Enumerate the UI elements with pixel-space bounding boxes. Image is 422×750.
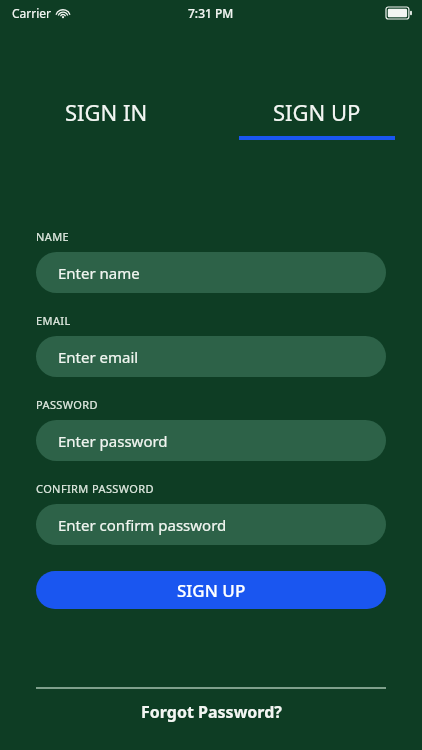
- button[interactable]: Forgot Password?: [36, 701, 386, 723]
- button[interactable]: Enter name: [36, 252, 386, 293]
- staticText: SIGN IN: [65, 97, 148, 127]
- staticText: Enter name: [58, 263, 140, 283]
- staticText: SIGN UP: [177, 579, 246, 602]
- button[interactable]: Enter confirm password: [36, 504, 386, 545]
- button[interactable]: Enter email: [36, 336, 386, 377]
- staticText: Enter confirm password: [58, 515, 227, 535]
- button[interactable]: SIGN UP: [211, 97, 422, 140]
- staticText: PASSWORD: [36, 397, 98, 412]
- button[interactable]: Enter password: [36, 420, 386, 461]
- staticText: Enter password: [58, 431, 168, 451]
- staticText: Enter email: [58, 347, 139, 367]
- button[interactable]: SIGN UP: [36, 571, 386, 609]
- staticText: NAME: [36, 229, 70, 244]
- staticText: Forgot Password?: [141, 701, 282, 723]
- staticText: CONFIRM PASSWORD: [36, 481, 154, 496]
- staticText: 7:31 PM: [188, 5, 234, 21]
- button[interactable]: SIGN IN: [0, 97, 211, 140]
- staticText: SIGN UP: [273, 97, 361, 127]
- staticText: EMAIL: [36, 313, 71, 328]
- staticText: Carrier: [12, 5, 52, 21]
